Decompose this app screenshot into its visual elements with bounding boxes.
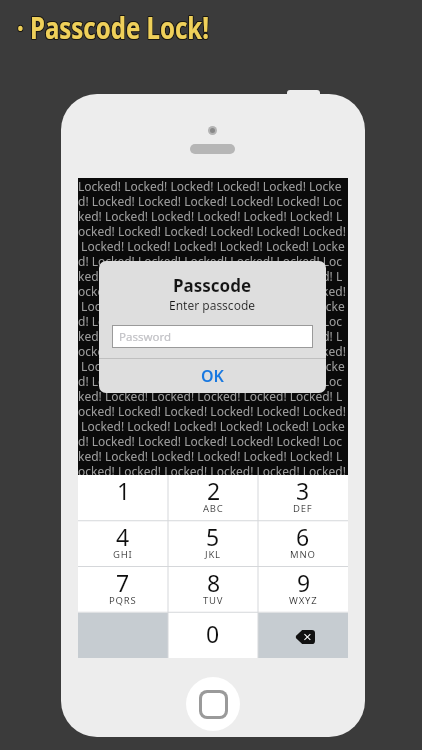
staticText: · Passcode Lock!: [17, 8, 209, 49]
button[interactable]: OK: [99, 359, 326, 393]
staticText: DEF: [293, 502, 313, 515]
staticText: · Passcode Lock!: [17, 7, 209, 48]
staticText: · Passcode Lock!: [16, 7, 208, 48]
staticText: ked! Locked! Locked! Locked! Locked! Loc…: [78, 328, 343, 343]
button[interactable]: Home: [186, 677, 240, 731]
staticText: 9: [297, 567, 311, 598]
staticText: d! Locked! Locked! Locked! Locked! Locke…: [78, 193, 343, 208]
button[interactable]: 8: [168, 567, 258, 613]
staticText: ked! Locked! Locked! Locked! Locked! Loc…: [78, 208, 343, 223]
button[interactable]: 6: [258, 521, 348, 567]
staticText: 2: [207, 475, 221, 506]
button[interactable]: 4: [78, 521, 168, 567]
staticText: Password: [119, 329, 172, 345]
staticText: 8: [207, 567, 221, 598]
staticText: PQRS: [109, 594, 137, 607]
staticText: · Passcode Lock!: [18, 7, 210, 48]
staticText: Enter passcode: [169, 297, 256, 313]
staticText: WXYZ: [289, 594, 318, 607]
button[interactable]: 2: [168, 475, 258, 521]
button[interactable]: 1: [78, 475, 168, 521]
staticText: ked! Locked! Locked! Locked! Locked! Loc…: [78, 388, 343, 403]
staticText: ocked! Locked! Locked! Locked! Locked! L…: [78, 403, 346, 418]
staticText: ked! Locked! Locked! Locked! Locked! Loc…: [78, 448, 343, 463]
staticText: Passcode: [173, 274, 252, 297]
button[interactable]: 3: [258, 475, 348, 521]
staticText: · Passcode Lock!: [17, 6, 209, 47]
staticText: Locked! Locked! Locked! Locked! Locked! …: [78, 418, 345, 433]
staticText: · Passcode Lock!: [18, 6, 210, 47]
staticText: GHI: [113, 548, 133, 561]
button[interactable]: Password: [113, 326, 312, 347]
staticText: ocked! Locked! Locked! Locked! Locked! L…: [78, 343, 346, 358]
staticText: d! Locked! Locked! Locked! Locked! Locke…: [78, 313, 343, 328]
button[interactable]: Delete: [258, 613, 348, 658]
staticText: 6: [296, 521, 310, 552]
staticText: · Passcode Lock!: [16, 6, 208, 47]
staticText: 5: [206, 521, 220, 552]
staticText: TUV: [203, 594, 224, 607]
staticText: 0: [206, 618, 220, 649]
button[interactable]: 0: [168, 613, 258, 658]
staticText: 1: [117, 475, 131, 506]
staticText: · Passcode Lock!: [16, 8, 208, 49]
staticText: 7: [116, 567, 130, 598]
staticText: · Passcode Lock!: [18, 8, 210, 49]
staticText: ABC: [203, 502, 224, 515]
staticText: ocked! Locked! Locked! Locked! Locked! L…: [78, 283, 346, 298]
staticText: ocked! Locked! Locked! Locked! Locked! L…: [78, 463, 346, 475]
button[interactable]: 9: [258, 567, 348, 613]
staticText: Locked! Locked! Locked! Locked! Locked! …: [78, 178, 342, 193]
button[interactable]: 5: [168, 521, 258, 567]
staticText: ked! Locked! Locked! Locked! Locked! Loc…: [78, 268, 343, 283]
staticText: Locked! Locked! Locked! Locked! Locked! …: [78, 358, 345, 373]
button[interactable]: 7: [78, 567, 168, 613]
staticText: Locked! Locked! Locked! Locked! Locked! …: [78, 238, 345, 253]
staticText: JKL: [205, 548, 221, 561]
staticText: OK: [201, 365, 224, 387]
staticText: d! Locked! Locked! Locked! Locked! Locke…: [78, 253, 343, 268]
staticText: MNO: [290, 548, 316, 561]
staticText: 4: [116, 521, 130, 552]
staticText: Locked! Locked! Locked! Locked! Locked! …: [78, 298, 345, 313]
staticText: d! Locked! Locked! Locked! Locked! Locke…: [78, 433, 343, 448]
staticText: d! Locked! Locked! Locked! Locked! Locke…: [78, 373, 343, 388]
staticText: ocked! Locked! Locked! Locked! Locked! L…: [78, 223, 346, 238]
staticText: 3: [296, 475, 310, 506]
